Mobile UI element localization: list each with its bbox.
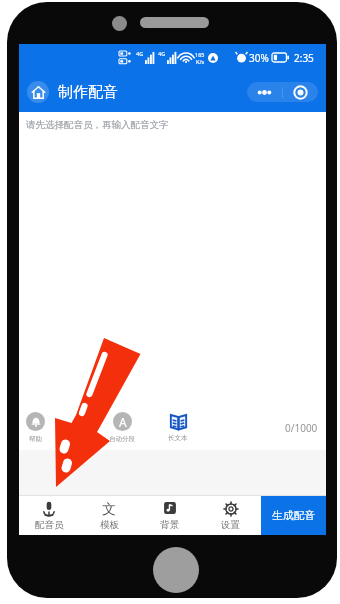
button[interactable]: More options bbox=[247, 82, 282, 102]
staticText: 4G bbox=[158, 50, 166, 57]
button[interactable]: 配音员 bbox=[19, 496, 79, 535]
button[interactable]: 文 bbox=[79, 496, 139, 535]
button[interactable]: 帮助 bbox=[24, 410, 47, 445]
staticText: 2:35 bbox=[294, 51, 314, 65]
staticText: 请先选择配音员，再输入配音文字 bbox=[26, 119, 169, 131]
button[interactable]: 长文本 bbox=[166, 411, 190, 444]
button[interactable]: 设置 bbox=[200, 496, 261, 535]
staticText: 生成配音 bbox=[272, 509, 316, 523]
staticText: 4G bbox=[136, 50, 144, 57]
button[interactable]: Close app bbox=[283, 82, 318, 102]
staticText: K/s bbox=[196, 58, 205, 65]
staticText: 自动分段 bbox=[109, 435, 135, 443]
button[interactable]: 生成配音 bbox=[261, 496, 326, 535]
staticText: 配音员 bbox=[35, 519, 64, 531]
staticText: 帮助 bbox=[29, 435, 42, 443]
staticText: 模板 bbox=[100, 519, 119, 531]
staticText: 0/1000 bbox=[285, 421, 318, 435]
button[interactable]: 背景 bbox=[139, 496, 200, 535]
button[interactable]: A bbox=[107, 410, 137, 445]
staticText: 设置 bbox=[221, 519, 240, 531]
staticText: 背景 bbox=[160, 519, 179, 531]
staticText: A bbox=[119, 414, 127, 430]
staticText: 165 bbox=[195, 51, 205, 58]
button[interactable]: 制作配音 bbox=[19, 75, 127, 109]
staticText: 长文本 bbox=[168, 434, 188, 442]
staticText: 30% bbox=[249, 51, 269, 65]
staticText: 文 bbox=[102, 501, 116, 517]
staticText: 制作配音 bbox=[58, 83, 118, 102]
